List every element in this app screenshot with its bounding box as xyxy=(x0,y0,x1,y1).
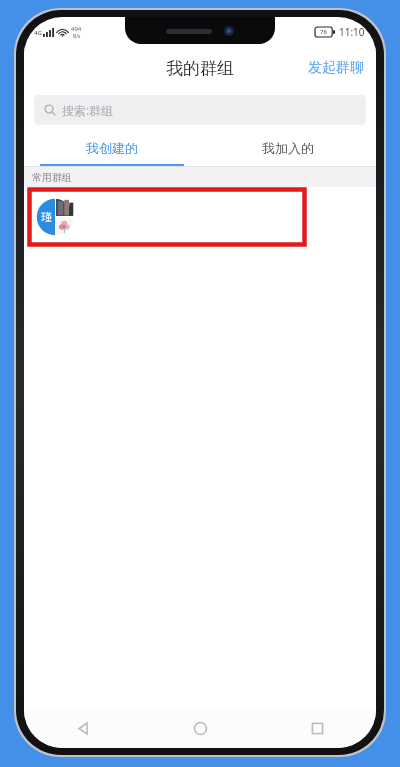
staticText: 我创建的 xyxy=(86,140,138,156)
staticText: 494 xyxy=(71,25,82,33)
button[interactable]: 我加入的 xyxy=(200,131,376,164)
staticText: 我加入的 xyxy=(262,140,314,156)
button[interactable]: 我创建的 xyxy=(24,131,200,164)
staticText: 发起群聊 xyxy=(308,59,364,77)
button[interactable]: 瑾 xyxy=(28,188,306,246)
button[interactable]: Back xyxy=(24,708,142,748)
staticText: 4G xyxy=(34,29,42,37)
staticText: 我的群组 xyxy=(166,58,234,79)
button[interactable]: 搜索:群组 xyxy=(34,95,366,125)
button[interactable]: 发起群聊 xyxy=(296,51,376,85)
staticText: 76 xyxy=(320,28,327,36)
staticText: 11:10 xyxy=(339,25,365,39)
staticText: 常用群组 xyxy=(32,171,72,184)
button[interactable]: Recent apps xyxy=(259,708,376,748)
staticText: 瑾 xyxy=(41,210,52,224)
staticText: B/s xyxy=(73,33,81,40)
button[interactable]: Home xyxy=(142,708,259,748)
staticText: 搜索:群组 xyxy=(62,102,114,118)
